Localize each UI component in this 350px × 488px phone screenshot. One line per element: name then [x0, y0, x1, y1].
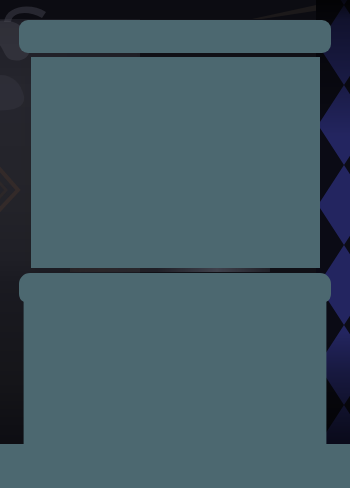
button[interactable]: Search [19, 20, 331, 53]
button[interactable]: Details panel [19, 273, 331, 444]
